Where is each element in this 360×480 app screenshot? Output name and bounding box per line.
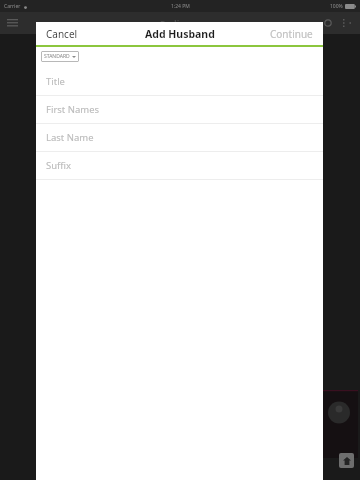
staticText: Cancel [46, 27, 78, 41]
staticText: Carrier [4, 3, 21, 10]
staticText: Suffix [46, 159, 72, 172]
staticText: 100% [330, 3, 343, 10]
button[interactable]: Search [321, 16, 335, 30]
staticText: STANDARD [44, 53, 70, 60]
button[interactable]: First Names [36, 96, 323, 124]
staticText: Title [46, 75, 65, 88]
staticText: 1:24 PM [171, 3, 190, 10]
staticText: Pedigree [160, 17, 200, 29]
staticText: Add Husband [145, 27, 215, 41]
button[interactable]: Suffix [36, 152, 323, 180]
staticText: First Names [46, 103, 100, 116]
staticText: Continue [270, 27, 313, 41]
button[interactable]: Title [36, 68, 323, 96]
button[interactable]: STANDARD [41, 51, 79, 62]
button[interactable] [320, 390, 358, 458]
button[interactable]: More options [340, 16, 354, 30]
button[interactable]: Cancel [36, 23, 88, 45]
button[interactable]: Home [339, 453, 354, 468]
button[interactable]: Continue [260, 23, 323, 45]
button[interactable]: Last Name [36, 124, 323, 152]
button[interactable]: Menu [4, 16, 21, 30]
staticText: Last Name [46, 131, 94, 144]
